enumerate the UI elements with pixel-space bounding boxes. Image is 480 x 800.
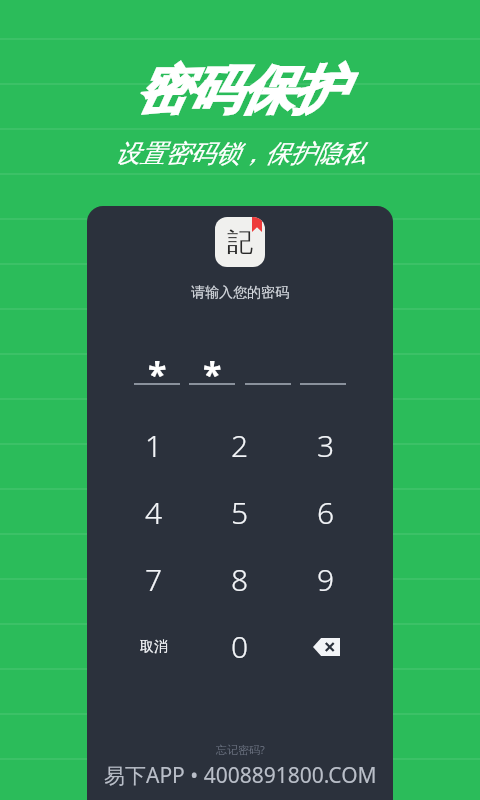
staticText: * (148, 351, 167, 377)
staticText: 0 (231, 626, 249, 667)
staticText: 取消 (140, 638, 168, 656)
staticText: * (203, 351, 222, 377)
staticText: 密码保护 (136, 58, 344, 124)
staticText: 5 (231, 492, 249, 533)
button[interactable]: 6 (287, 482, 365, 543)
button[interactable]: 8 (201, 549, 279, 610)
staticText: 8 (231, 559, 249, 600)
button[interactable]: 3 (287, 415, 365, 476)
staticText: 3 (317, 425, 335, 466)
staticText: 4 (145, 492, 163, 533)
staticText: 易下APP • 4008891800.COM (104, 761, 377, 790)
button[interactable]: 1 (115, 415, 193, 476)
button[interactable]: 2 (201, 415, 279, 476)
staticText: 9 (317, 559, 335, 600)
button[interactable]: 7 (115, 549, 193, 610)
staticText: 6 (317, 492, 335, 533)
button[interactable]: 0 (201, 616, 279, 677)
staticText: 请输入您的密码 (191, 284, 289, 302)
staticText: 記 (227, 226, 253, 259)
staticText: 2 (231, 425, 249, 466)
staticText: 设置密码锁，保护隐私 (115, 138, 365, 169)
button[interactable]: 忘记密码? (216, 742, 265, 757)
button[interactable]: 取消 (115, 616, 193, 677)
staticText: 1 (145, 425, 163, 466)
staticText: 7 (145, 559, 163, 600)
button[interactable]: 4 (115, 482, 193, 543)
button[interactable]: Backspace (287, 616, 365, 677)
button[interactable]: 9 (287, 549, 365, 610)
button[interactable]: 5 (201, 482, 279, 543)
